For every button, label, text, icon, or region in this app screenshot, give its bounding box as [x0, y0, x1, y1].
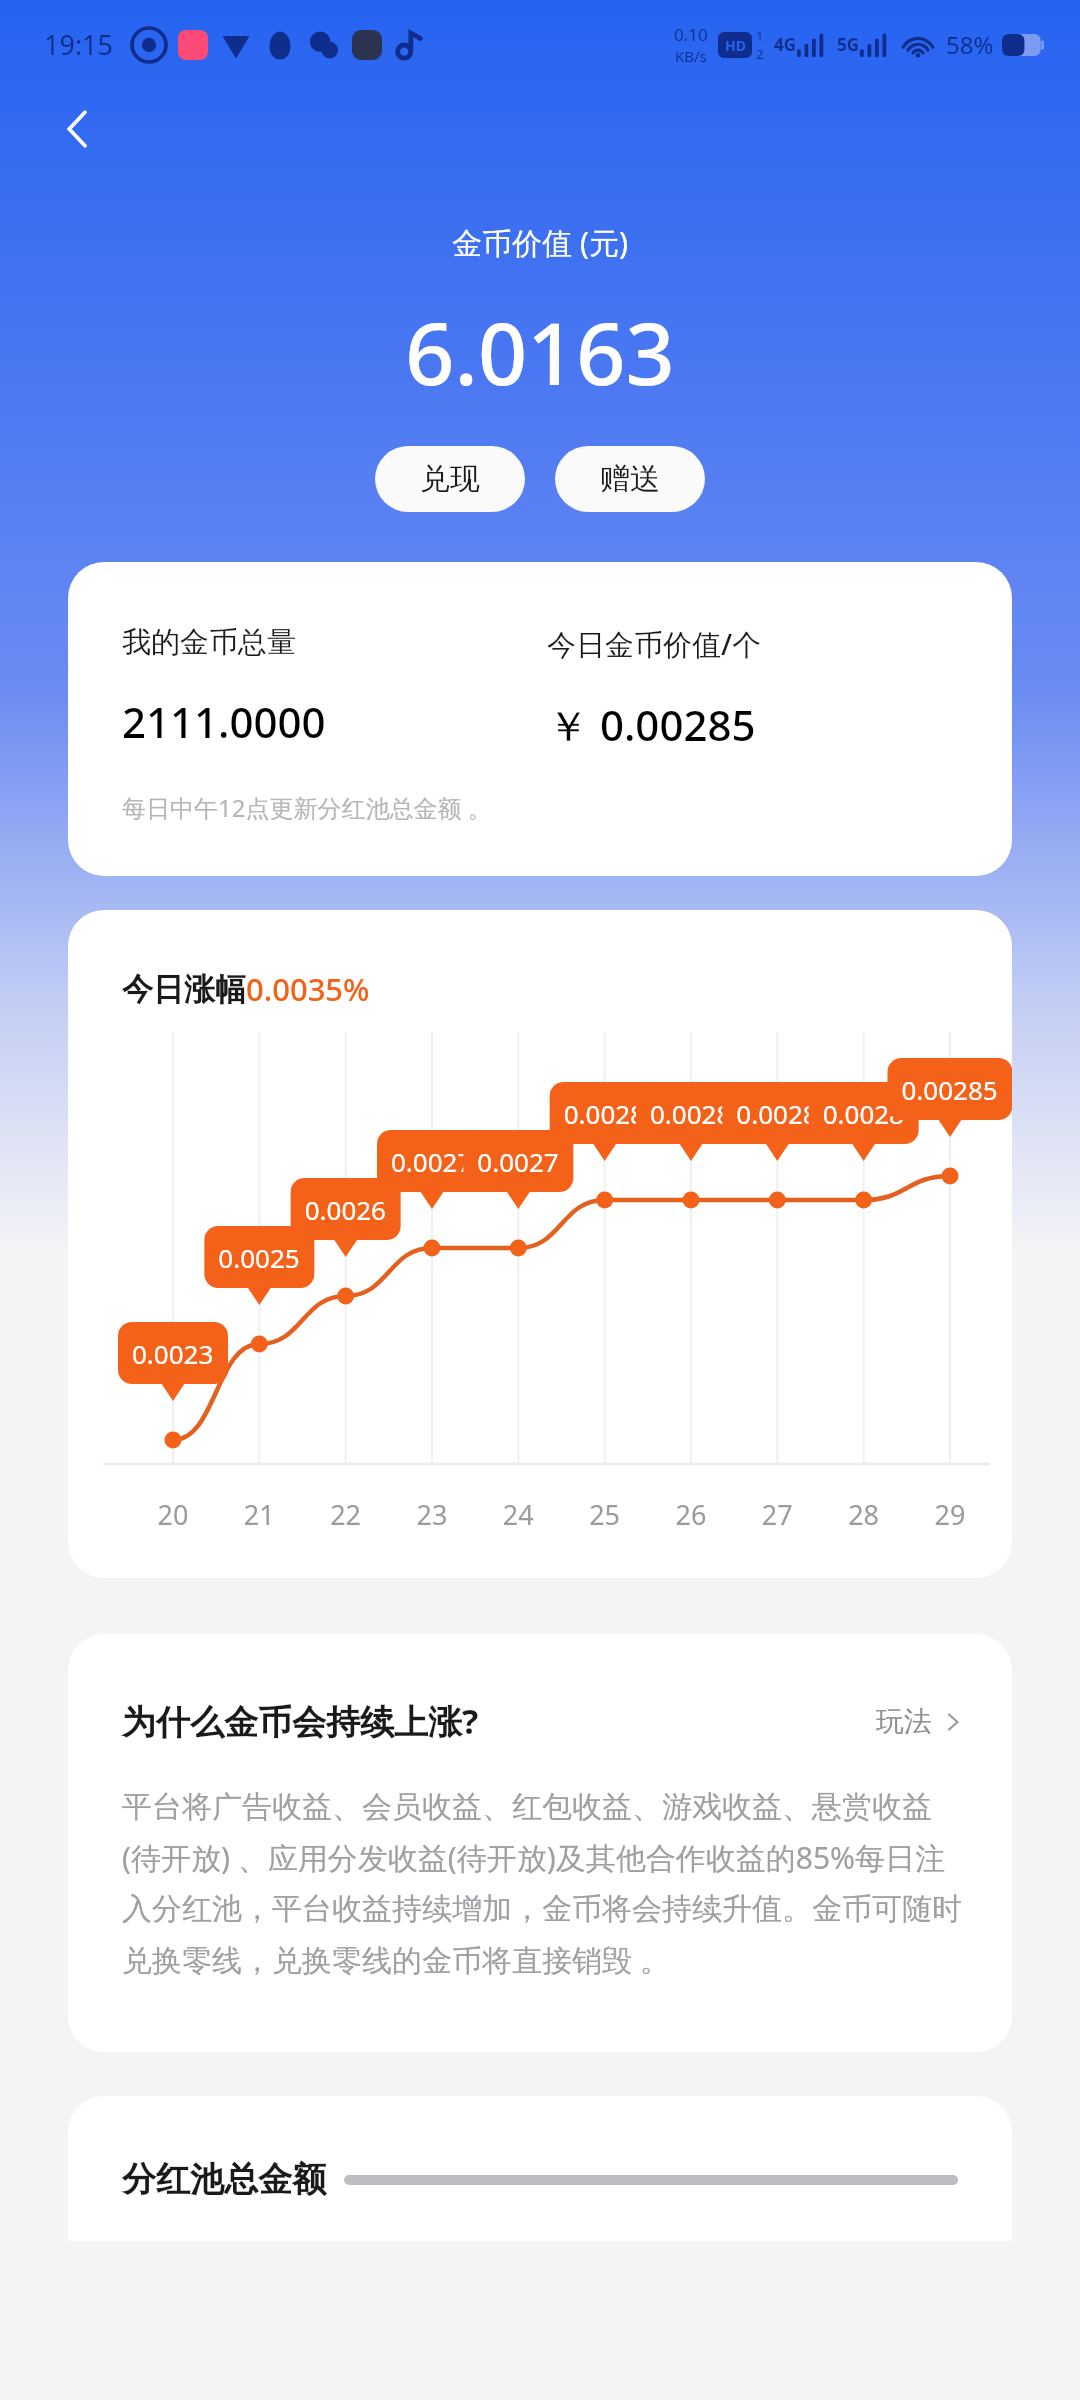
- staticText: 我的金币总量: [122, 624, 296, 661]
- staticText: 每日中午12点更新分红池总金额 。: [122, 791, 492, 824]
- button[interactable]: 为什么金币会持续上涨?: [68, 1634, 1012, 2052]
- staticText: 1: [756, 27, 764, 45]
- staticText: 6.0163: [405, 293, 675, 410]
- staticText: ￥ 0.00285: [547, 696, 756, 753]
- staticText: 兑现: [420, 460, 480, 498]
- button[interactable]: 今日涨幅: [68, 910, 1012, 1578]
- button[interactable]: 我的金币总量: [68, 562, 1012, 876]
- staticText: 0.10: [674, 23, 708, 46]
- staticText: 2: [756, 45, 764, 63]
- staticText: 2111.0000: [122, 693, 326, 750]
- staticText: 为什么金币会持续上涨?: [122, 1698, 479, 1744]
- button[interactable]: Back: [40, 91, 116, 167]
- button[interactable]: 分红池总金额: [68, 2096, 1012, 2241]
- staticText: KB/s: [675, 46, 707, 66]
- staticText: 今日金币价值/个: [547, 624, 762, 664]
- button[interactable]: 兑现: [375, 446, 525, 512]
- staticText: 金币价值 (元): [452, 222, 628, 263]
- staticText: 平台将广告收益、会员收益、红包收益、游戏收益、悬赏收益(待开放) 、应用分发收益…: [122, 1788, 964, 1980]
- button[interactable]: 玩法: [876, 1704, 964, 1739]
- staticText: 赠送: [600, 460, 660, 498]
- staticText: 19:15: [44, 26, 114, 63]
- staticText: 4G: [774, 33, 797, 56]
- staticText: 0.0035%: [246, 968, 370, 1010]
- staticText: 分红池总金额: [122, 2158, 326, 2201]
- staticText: 58%: [946, 28, 994, 61]
- staticText: 5G: [837, 33, 860, 56]
- staticText: 玩法: [876, 1704, 932, 1739]
- button[interactable]: 赠送: [555, 446, 705, 512]
- staticText: HD: [725, 36, 746, 55]
- staticText: 今日涨幅: [122, 970, 246, 1009]
